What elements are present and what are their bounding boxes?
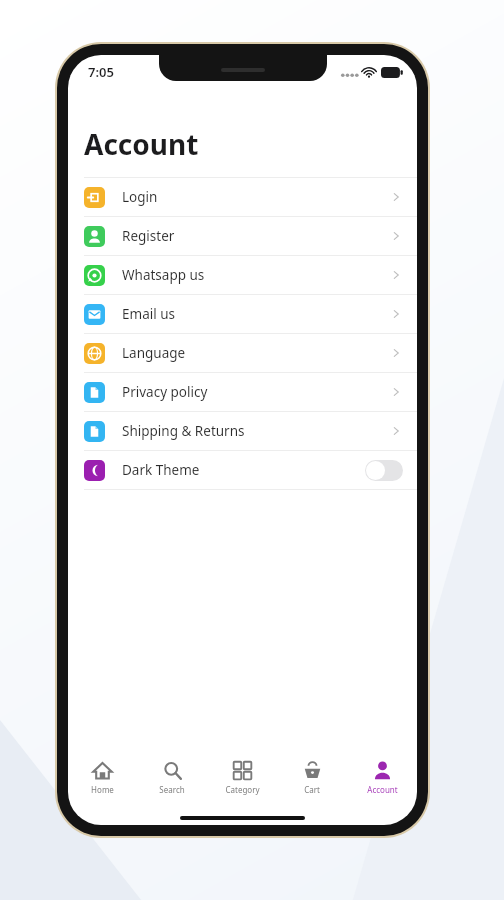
staticText: Home xyxy=(91,784,114,795)
button[interactable]: Email us xyxy=(68,295,417,334)
staticText: Account xyxy=(367,784,398,795)
staticText: Login xyxy=(122,188,158,206)
button[interactable]: Category xyxy=(207,751,277,803)
staticText: Shipping & Returns xyxy=(122,422,245,440)
button[interactable]: Account xyxy=(347,751,417,803)
staticText: 7:05 xyxy=(88,63,114,81)
staticText: Privacy policy xyxy=(122,383,208,401)
button[interactable]: Search xyxy=(137,751,207,803)
button[interactable]: Cart xyxy=(277,751,347,803)
staticText: Language xyxy=(122,344,186,362)
button[interactable]: Language xyxy=(68,334,417,373)
staticText: Whatsapp us xyxy=(122,266,205,284)
button[interactable]: Dark Theme xyxy=(68,451,417,489)
staticText: Dark Theme xyxy=(122,461,200,479)
button[interactable]: Login xyxy=(68,178,417,217)
staticText: Register xyxy=(122,227,175,245)
staticText: Email us xyxy=(122,305,175,323)
button[interactable]: Dark theme toggle xyxy=(365,460,403,481)
button[interactable]: Home xyxy=(68,751,137,803)
staticText: Search xyxy=(159,784,185,795)
button[interactable]: Shipping & Returns xyxy=(68,412,417,451)
button[interactable]: Whatsapp us xyxy=(68,256,417,295)
button[interactable]: Register xyxy=(68,217,417,256)
button[interactable]: Privacy policy xyxy=(68,373,417,412)
staticText: Account xyxy=(84,125,199,163)
staticText: Cart xyxy=(304,784,320,795)
staticText: Category xyxy=(225,784,260,795)
